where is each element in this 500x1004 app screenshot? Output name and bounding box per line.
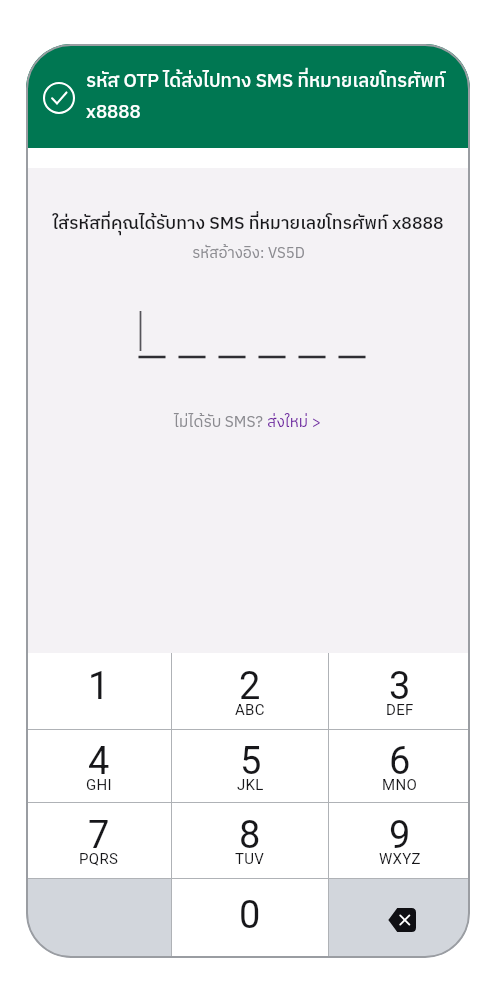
staticText: x8888	[86, 97, 141, 128]
staticText: PQRS	[79, 850, 119, 868]
staticText: 0	[239, 893, 261, 938]
staticText: ไม่ได้รับ SMS?	[174, 410, 267, 436]
button[interactable]: 8	[172, 803, 328, 878]
staticText: 3	[389, 664, 411, 709]
staticText: ใส่รหัสที่คุณได้รับทาง SMS ที่หมายเลขโทร…	[52, 209, 444, 238]
staticText: 5	[240, 739, 262, 784]
button[interactable]: 3	[329, 653, 470, 729]
button[interactable]: ส่งใหม่ >	[267, 410, 322, 436]
staticText: ABC	[235, 701, 265, 719]
button[interactable]: 4	[26, 730, 171, 802]
staticText: TUV	[235, 850, 265, 868]
staticText: 9	[389, 813, 411, 858]
button[interactable]: Blank	[26, 879, 171, 958]
staticText: GHI	[86, 776, 112, 794]
button[interactable]: 2	[172, 653, 328, 729]
button[interactable]: 7	[26, 803, 171, 878]
staticText: 8	[239, 813, 261, 858]
button[interactable]: 1	[26, 653, 171, 729]
staticText: รหัสอ้างอิง: VS5D	[192, 241, 305, 266]
staticText: 7	[88, 813, 110, 858]
staticText: 1	[88, 664, 110, 709]
staticText: 2	[239, 664, 261, 709]
button[interactable]: Backspace	[329, 879, 470, 958]
staticText: รหัส OTP ได้ส่งไปทาง SMS ที่หมายเลขโทรศั…	[86, 66, 446, 97]
button[interactable]: 0	[172, 879, 328, 958]
button[interactable]: 5	[172, 730, 328, 802]
button[interactable]: 6	[329, 730, 470, 802]
staticText: ส่งใหม่ >	[267, 410, 322, 436]
staticText: DEF	[386, 701, 414, 719]
staticText: JKL	[237, 776, 264, 794]
staticText: 4	[88, 739, 110, 784]
staticText: MNO	[382, 776, 418, 794]
staticText: 6	[389, 739, 411, 784]
staticText: WXYZ	[379, 850, 421, 868]
button[interactable]: 9	[329, 803, 470, 878]
